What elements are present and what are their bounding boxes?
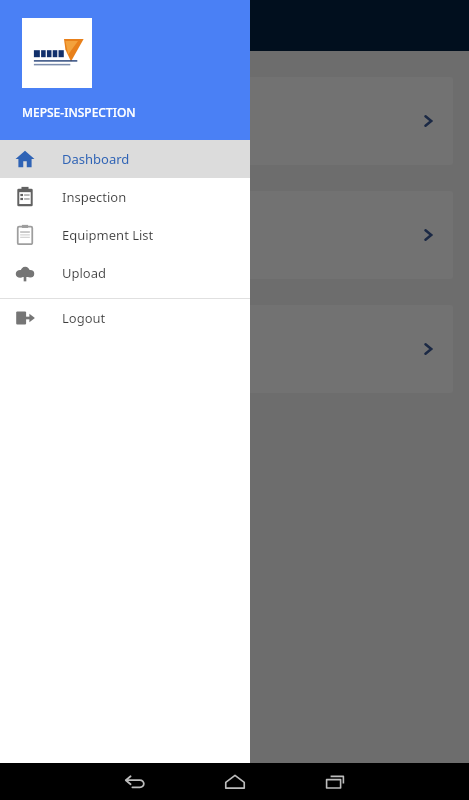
- button[interactable]: [0, 0, 469, 763]
- button[interactable]: Back: [103, 763, 167, 800]
- button[interactable]: [16, 77, 453, 165]
- staticText: Inspection: [62, 188, 127, 206]
- staticText: Upload: [62, 264, 107, 282]
- button[interactable]: Dashboard: [0, 140, 250, 178]
- staticText: Dashboard: [62, 150, 130, 168]
- staticText: Logout: [62, 309, 106, 327]
- staticText: MEPSE-INSPECTION: [22, 104, 136, 120]
- button[interactable]: Upload: [0, 254, 250, 292]
- button[interactable]: [16, 191, 453, 279]
- button[interactable]: Inspection: [0, 178, 250, 216]
- button[interactable]: Recent apps: [303, 763, 367, 800]
- button[interactable]: Home: [203, 763, 267, 800]
- button[interactable]: Logout: [0, 299, 250, 337]
- staticText: Equipment List: [62, 226, 154, 244]
- button[interactable]: Equipment List: [0, 216, 250, 254]
- button[interactable]: [16, 305, 453, 393]
